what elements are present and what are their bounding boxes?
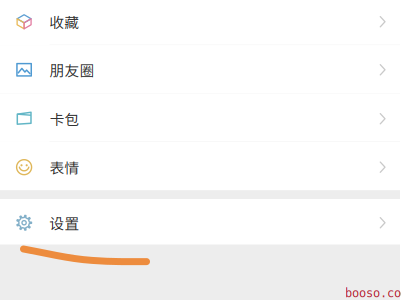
staticText: 朋友圈 bbox=[49, 59, 94, 80]
button[interactable]: 设置 bbox=[0, 199, 400, 244]
staticText: 卡包 bbox=[49, 108, 79, 129]
staticText: 表情 bbox=[49, 157, 79, 178]
button[interactable]: 卡包 bbox=[0, 93, 400, 142]
staticText: 设置 bbox=[49, 212, 79, 233]
staticText: 收藏 bbox=[49, 11, 79, 32]
staticText: booso.com bbox=[345, 286, 401, 300]
button[interactable]: 收藏 bbox=[0, 0, 400, 45]
button[interactable]: 朋友圈 bbox=[0, 45, 400, 94]
button[interactable]: 表情 bbox=[0, 142, 400, 190]
